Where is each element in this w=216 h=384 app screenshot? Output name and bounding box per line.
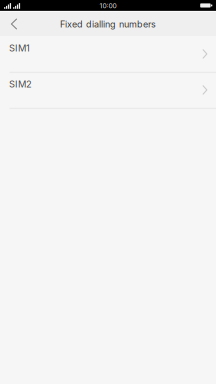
staticText: SIM2 [9, 78, 32, 90]
button[interactable]: Back [0, 12, 28, 36]
button[interactable]: SIM2 [0, 72, 216, 108]
staticText: Fixed dialling numbers [60, 19, 156, 30]
staticText: SIM1 [9, 42, 30, 54]
button[interactable]: SIM1 [0, 36, 216, 72]
staticText: 10:00 [99, 2, 116, 10]
